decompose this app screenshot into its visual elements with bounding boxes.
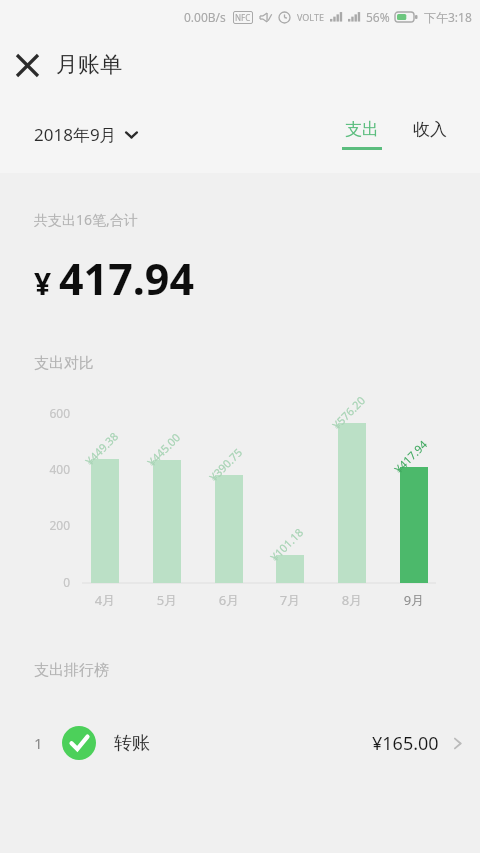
button[interactable]: 1 bbox=[0, 714, 480, 772]
staticText: ¥445.00 bbox=[144, 430, 183, 469]
staticText: 400 bbox=[20, 461, 70, 477]
staticText: 5月 bbox=[147, 591, 187, 609]
staticText: 417.94 bbox=[59, 249, 195, 308]
staticText: ¥390.75 bbox=[206, 445, 245, 484]
staticText: NFC bbox=[235, 12, 251, 23]
staticText: 支出 bbox=[345, 119, 379, 140]
staticText: ¥576.20 bbox=[329, 393, 368, 432]
staticText: ¥165.00 bbox=[372, 731, 439, 756]
staticText: 月账单 bbox=[56, 51, 122, 79]
staticText: 600 bbox=[20, 405, 70, 421]
staticText: ¥417.94 bbox=[391, 437, 430, 476]
button[interactable]: 支出 bbox=[336, 117, 388, 152]
staticText: 56% bbox=[366, 9, 390, 25]
button[interactable]: 收入 bbox=[404, 117, 456, 152]
staticText: 0.00B/s bbox=[184, 9, 226, 25]
button[interactable]: 2018年9月 bbox=[30, 117, 142, 152]
staticText: 0 bbox=[20, 574, 70, 590]
button[interactable]: 关闭 bbox=[4, 42, 50, 88]
staticText: 1 bbox=[34, 733, 58, 753]
staticText: ¥101.18 bbox=[267, 525, 306, 564]
staticText: ¥449.38 bbox=[82, 429, 121, 468]
staticText: VOLTE bbox=[297, 11, 324, 23]
staticText: 7月 bbox=[270, 591, 310, 609]
staticText: 4月 bbox=[85, 591, 125, 609]
staticText: 共支出16笔,合计 bbox=[34, 210, 138, 229]
staticText: 6月 bbox=[209, 591, 249, 609]
staticText: 8月 bbox=[332, 591, 372, 609]
staticText: 9月 bbox=[394, 591, 434, 609]
staticText: 支出排行榜 bbox=[34, 661, 109, 680]
staticText: 转账 bbox=[114, 732, 150, 755]
staticText: ¥ bbox=[34, 263, 52, 304]
staticText: 收入 bbox=[413, 119, 447, 140]
staticText: 200 bbox=[20, 517, 70, 533]
staticText: 下午3:18 bbox=[424, 9, 472, 25]
staticText: 支出对比 bbox=[34, 354, 94, 373]
staticText: 2018年9月 bbox=[34, 123, 117, 146]
